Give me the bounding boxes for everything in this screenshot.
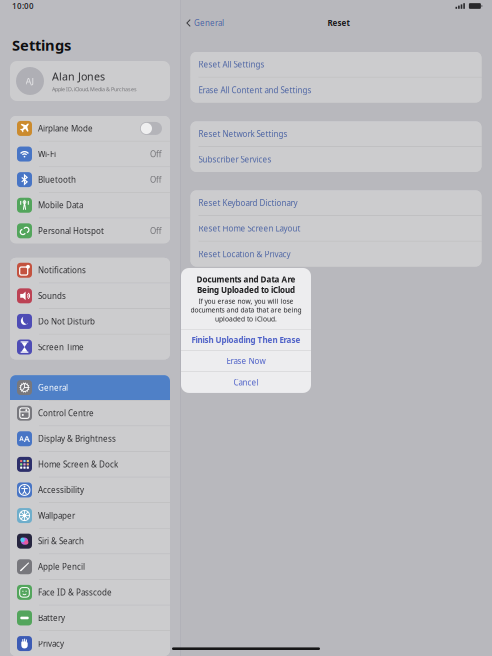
button[interactable]: Wallpaper: [10, 503, 170, 528]
staticText: Face ID & Passcode: [38, 587, 112, 598]
button[interactable]: General: [180, 14, 224, 32]
button[interactable]: Reset Network Settings: [190, 121, 481, 146]
staticText: 10:00: [12, 1, 34, 11]
staticText: Off: [150, 225, 162, 236]
button[interactable]: Reset Home Screen Layout: [190, 216, 481, 241]
staticText: documents and data that are being: [190, 306, 301, 314]
button[interactable]: Cancel: [181, 372, 311, 393]
staticText: Control Centre: [38, 408, 94, 418]
button[interactable]: Reset Location & Privacy: [190, 242, 481, 266]
staticText: Off: [150, 174, 162, 185]
staticText: Erase Now: [226, 356, 265, 366]
staticText: A: [24, 433, 30, 445]
button[interactable]: Finish Uploading Then Erase: [181, 330, 311, 350]
staticText: Reset All Settings: [198, 59, 264, 70]
staticText: Privacy: [38, 638, 64, 649]
staticText: General: [194, 18, 224, 28]
button[interactable]: Reset All Settings: [190, 52, 481, 77]
staticText: General: [38, 382, 68, 393]
staticText: Apple Pencil: [38, 561, 85, 572]
button[interactable]: Home Screen & Dock: [10, 452, 170, 477]
button[interactable]: Notifications: [10, 258, 170, 283]
button[interactable]: General: [10, 375, 170, 400]
button[interactable]: Apple Pencil: [10, 554, 170, 579]
button[interactable]: AJ: [10, 61, 170, 101]
button[interactable]: Privacy: [10, 631, 170, 656]
staticText: uploaded to iCloud.: [215, 314, 277, 323]
staticText: If you erase now, you will lose: [198, 297, 293, 306]
button[interactable]: Face ID & Passcode: [10, 580, 170, 605]
button[interactable]: Control Centre: [10, 401, 170, 426]
button[interactable]: Siri & Search: [10, 529, 170, 554]
staticText: Mobile Data: [38, 200, 83, 210]
staticText: Bluetooth: [38, 174, 76, 185]
staticText: Apple ID, iCloud, Media & Purchases: [52, 85, 137, 93]
staticText: Subscriber Services: [198, 154, 271, 165]
staticText: Reset Keyboard Dictionary: [198, 197, 297, 208]
staticText: Off: [150, 149, 162, 159]
staticText: Finish Uploading Then Erase: [191, 335, 300, 345]
button[interactable]: Sounds: [10, 283, 170, 308]
staticText: Accessibility: [38, 485, 84, 495]
staticText: Display & Brightness: [38, 433, 116, 444]
button[interactable]: Screen Time: [10, 335, 170, 359]
button[interactable]: Do Not Disturb: [10, 309, 170, 334]
staticText: AJ: [25, 75, 34, 87]
staticText: Erase All Content and Settings: [198, 85, 311, 95]
staticText: Screen Time: [38, 342, 84, 352]
staticText: Home Screen & Dock: [38, 459, 118, 470]
staticText: Wallpaper: [38, 510, 75, 521]
button[interactable]: Battery: [10, 605, 170, 630]
button[interactable]: Wi-Fi: [10, 142, 170, 166]
button[interactable]: Bluetooth: [10, 167, 170, 192]
staticText: Personal Hotspot: [38, 225, 104, 236]
staticText: Reset: [327, 18, 349, 28]
staticText: Being Uploaded to iCloud: [197, 285, 295, 295]
staticText: Settings: [12, 35, 71, 55]
button[interactable]: A: [10, 426, 170, 451]
staticText: Wi-Fi: [38, 149, 56, 159]
button[interactable]: Personal Hotspot: [10, 218, 170, 243]
staticText: Battery: [38, 613, 65, 623]
button[interactable]: Accessibility: [10, 477, 170, 502]
staticText: Notifications: [38, 265, 86, 275]
staticText: Cancel: [233, 377, 258, 388]
staticText: Do Not Disturb: [38, 316, 95, 327]
staticText: Alan Jones: [52, 69, 105, 84]
staticText: Reset Network Settings: [198, 128, 287, 139]
button[interactable]: Subscriber Services: [190, 147, 481, 172]
staticText: Airplane Mode: [38, 123, 93, 134]
button[interactable]: Airplane Mode: [10, 116, 170, 141]
button[interactable]: Erase All Content and Settings: [190, 78, 481, 102]
button[interactable]: Mobile Data: [10, 193, 170, 218]
button[interactable]: Reset Keyboard Dictionary: [190, 190, 481, 215]
staticText: Sounds: [38, 290, 66, 301]
staticText: Documents and Data Are: [196, 274, 295, 285]
button[interactable]: Erase Now: [181, 351, 311, 371]
staticText: Reset Home Screen Layout: [198, 223, 300, 234]
staticText: Reset Location & Privacy: [198, 249, 290, 259]
staticText: A: [19, 434, 23, 443]
staticText: Siri & Search: [38, 536, 84, 546]
